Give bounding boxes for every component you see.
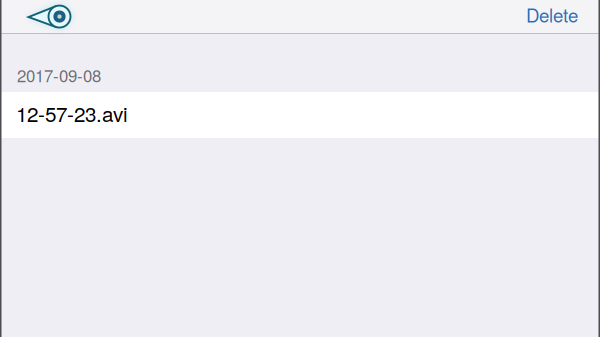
staticText: Delete bbox=[526, 1, 578, 28]
staticText: 12-57-23.avi bbox=[16, 98, 128, 128]
button[interactable]: Back bbox=[0, 0, 81, 33]
staticText: 2017-09-08 bbox=[17, 63, 101, 87]
button[interactable]: Delete bbox=[514, 0, 600, 33]
button[interactable]: 12-57-23.avi bbox=[0, 92, 600, 138]
